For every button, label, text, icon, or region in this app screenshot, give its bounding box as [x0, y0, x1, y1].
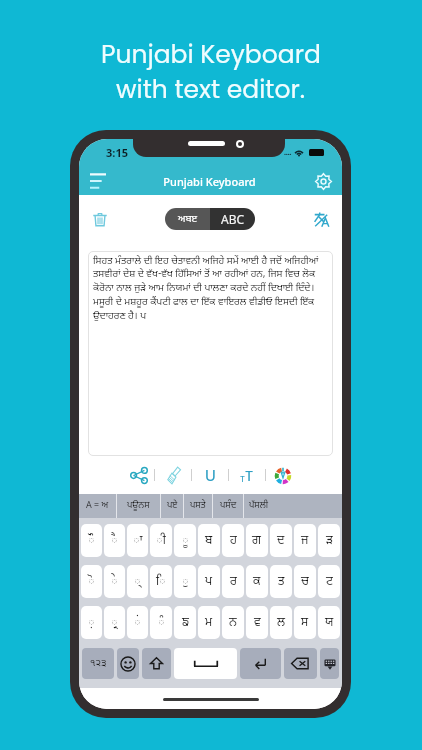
button[interactable]: ੁ — [174, 565, 196, 598]
button[interactable]: ੈ — [104, 524, 125, 557]
button[interactable]: ਅਬੲ — [165, 208, 210, 230]
button[interactable]: ੂ — [174, 524, 196, 557]
staticText: ਰ — [230, 574, 237, 590]
staticText: T — [245, 465, 254, 486]
button[interactable]: ੇ — [104, 565, 125, 598]
staticText: ੇ — [111, 574, 118, 590]
staticText: ਅਬੲ — [178, 213, 198, 226]
staticText: ੜ — [326, 533, 333, 549]
button[interactable]: ਯ — [318, 606, 340, 639]
button[interactable]: ਾ — [127, 524, 148, 557]
staticText: ੋ — [88, 574, 95, 590]
staticText: ਾ — [133, 533, 143, 549]
staticText: ਸ — [301, 615, 309, 631]
staticText: with text editor. — [116, 72, 306, 107]
staticText: ੍ਰ — [111, 615, 118, 631]
button[interactable]: Underline — [192, 460, 228, 490]
button[interactable]: ਜ — [294, 524, 316, 557]
button[interactable]: Translate — [306, 202, 336, 236]
button[interactable]: ਦ — [270, 524, 292, 557]
staticText: ਲ — [277, 615, 286, 631]
button[interactable]: Settings — [309, 168, 337, 194]
staticText: ਪੱਸਲੀ — [249, 500, 269, 512]
button[interactable]: Space — [174, 648, 237, 679]
staticText: ਗ — [252, 533, 262, 549]
button[interactable]: ਕ — [246, 565, 268, 598]
staticText: ੀ — [156, 533, 166, 549]
button[interactable]: ੰ — [150, 606, 172, 639]
staticText: ਯ — [325, 615, 334, 631]
button[interactable]: Share — [123, 460, 154, 490]
button[interactable]: Backspace — [284, 648, 317, 679]
staticText: ੍ — [134, 574, 141, 590]
button[interactable]: 123 — [82, 648, 114, 679]
button[interactable]: ਼ — [81, 606, 102, 639]
staticText: ABC — [221, 211, 245, 227]
staticText: ਕ — [253, 574, 261, 590]
staticText: ਪਸਤੇ — [190, 500, 206, 512]
button[interactable]: ਪਸੰਦ — [213, 494, 243, 518]
button[interactable]: ੀ — [150, 524, 172, 557]
button[interactable]: Keyboard — [320, 648, 339, 679]
staticText: ੧੨੩ — [90, 657, 107, 670]
staticText: ਙ — [182, 615, 189, 631]
staticText: ਨ — [229, 615, 237, 631]
button[interactable]: ੋ — [81, 565, 102, 598]
button[interactable]: ਪ — [198, 565, 220, 598]
staticText: ਪਏ — [167, 500, 178, 512]
staticText: T — [240, 473, 245, 486]
button[interactable]: ਙ — [174, 606, 196, 639]
staticText: ੌ — [88, 533, 95, 549]
staticText: ਦ — [277, 533, 285, 549]
staticText: ਜ — [301, 533, 309, 549]
button[interactable]: ਚ — [294, 565, 316, 598]
button[interactable]: ੍ਰ — [104, 606, 125, 639]
staticText: ਤ — [278, 574, 285, 590]
button[interactable]: ਮ — [198, 606, 220, 639]
staticText: ਪਸੰਦ — [220, 500, 237, 512]
button[interactable]: ਸ — [294, 606, 316, 639]
button[interactable]: ੜ — [318, 524, 340, 557]
button[interactable]: ੍ — [127, 565, 148, 598]
button[interactable]: ੌ — [81, 524, 102, 557]
button[interactable]: ਵ — [246, 606, 268, 639]
staticText: 3:15 — [106, 145, 128, 160]
staticText: ਮ — [205, 615, 213, 631]
button[interactable]: ਹ — [222, 524, 244, 557]
staticText: Punjabi Keyboard — [110, 174, 309, 189]
button[interactable]: Color — [266, 460, 299, 490]
staticText: Punjabi Keyboard — [101, 37, 321, 72]
button[interactable]: Shift — [142, 648, 171, 679]
button[interactable]: ABC — [210, 208, 255, 230]
staticText: U — [205, 464, 216, 486]
staticText: ਸਿਹਤ ਮੰਤਰਾਲੇ ਦੀ ਇਹ ਚੇਤਾਵਨੀ ਅਜਿਹੇ ਸਮੇਂ ਆਈ… — [93, 255, 328, 323]
staticText: ਿ — [156, 574, 166, 590]
button[interactable]: ਲ — [270, 606, 292, 639]
button[interactable]: ਬ — [198, 524, 220, 557]
button[interactable]: Emoji — [117, 648, 139, 679]
staticText: ਵ — [254, 615, 261, 631]
button[interactable]: ਟ — [318, 565, 340, 598]
button[interactable]: A = ਅ — [79, 494, 116, 518]
button[interactable]: ਿ — [150, 565, 172, 598]
button[interactable]: Menu — [90, 169, 110, 193]
button[interactable]: ਪਸਤੇ — [184, 494, 212, 518]
staticText: ਪਊਨਸ — [127, 500, 150, 512]
button[interactable]: Brush — [155, 460, 191, 490]
button[interactable]: ਗ — [246, 524, 268, 557]
button[interactable]: ਨ — [222, 606, 244, 639]
staticText: ਪ — [205, 574, 213, 590]
button[interactable]: ਤ — [270, 565, 292, 598]
button[interactable]: ਪਊਨਸ — [117, 494, 160, 518]
button[interactable]: ਪਏ — [161, 494, 183, 518]
button[interactable]: Enter — [240, 648, 281, 679]
staticText: ਂ — [134, 615, 141, 631]
staticText: ਹ — [230, 533, 237, 549]
staticText: ੂ — [182, 533, 189, 549]
button[interactable]: Delete — [85, 202, 115, 236]
button[interactable]: Text size — [229, 460, 265, 490]
staticText: ੰ — [158, 615, 165, 631]
button[interactable]: ਂ — [127, 606, 148, 639]
button[interactable]: ਪੱਸਲੀ — [244, 494, 274, 518]
button[interactable]: ਰ — [222, 565, 244, 598]
